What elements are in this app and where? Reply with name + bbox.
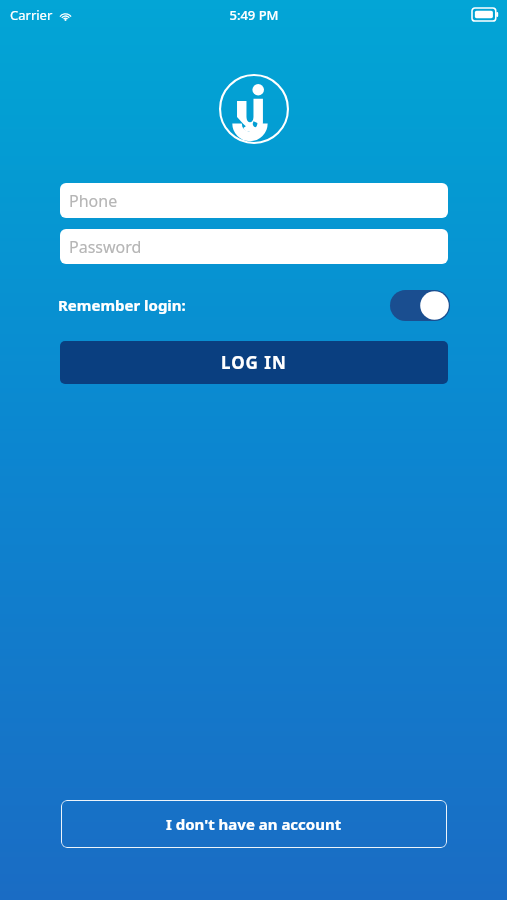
button[interactable]: LOG IN xyxy=(60,341,448,384)
staticText: LOG IN xyxy=(221,351,287,374)
button[interactable]: I don't have an account xyxy=(61,800,447,848)
staticText: Password xyxy=(69,236,142,258)
button[interactable]: Remember login: xyxy=(58,288,450,322)
staticText: Remember login: xyxy=(58,295,186,315)
staticText: Carrier xyxy=(10,6,53,24)
button[interactable]: Password xyxy=(60,229,448,264)
staticText: Phone xyxy=(69,190,118,212)
button[interactable]: Phone xyxy=(60,183,448,218)
button[interactable]: Remember login toggle, on xyxy=(390,290,450,321)
staticText: I don't have an account xyxy=(166,814,342,834)
staticText: 5:49 PM xyxy=(229,6,279,24)
